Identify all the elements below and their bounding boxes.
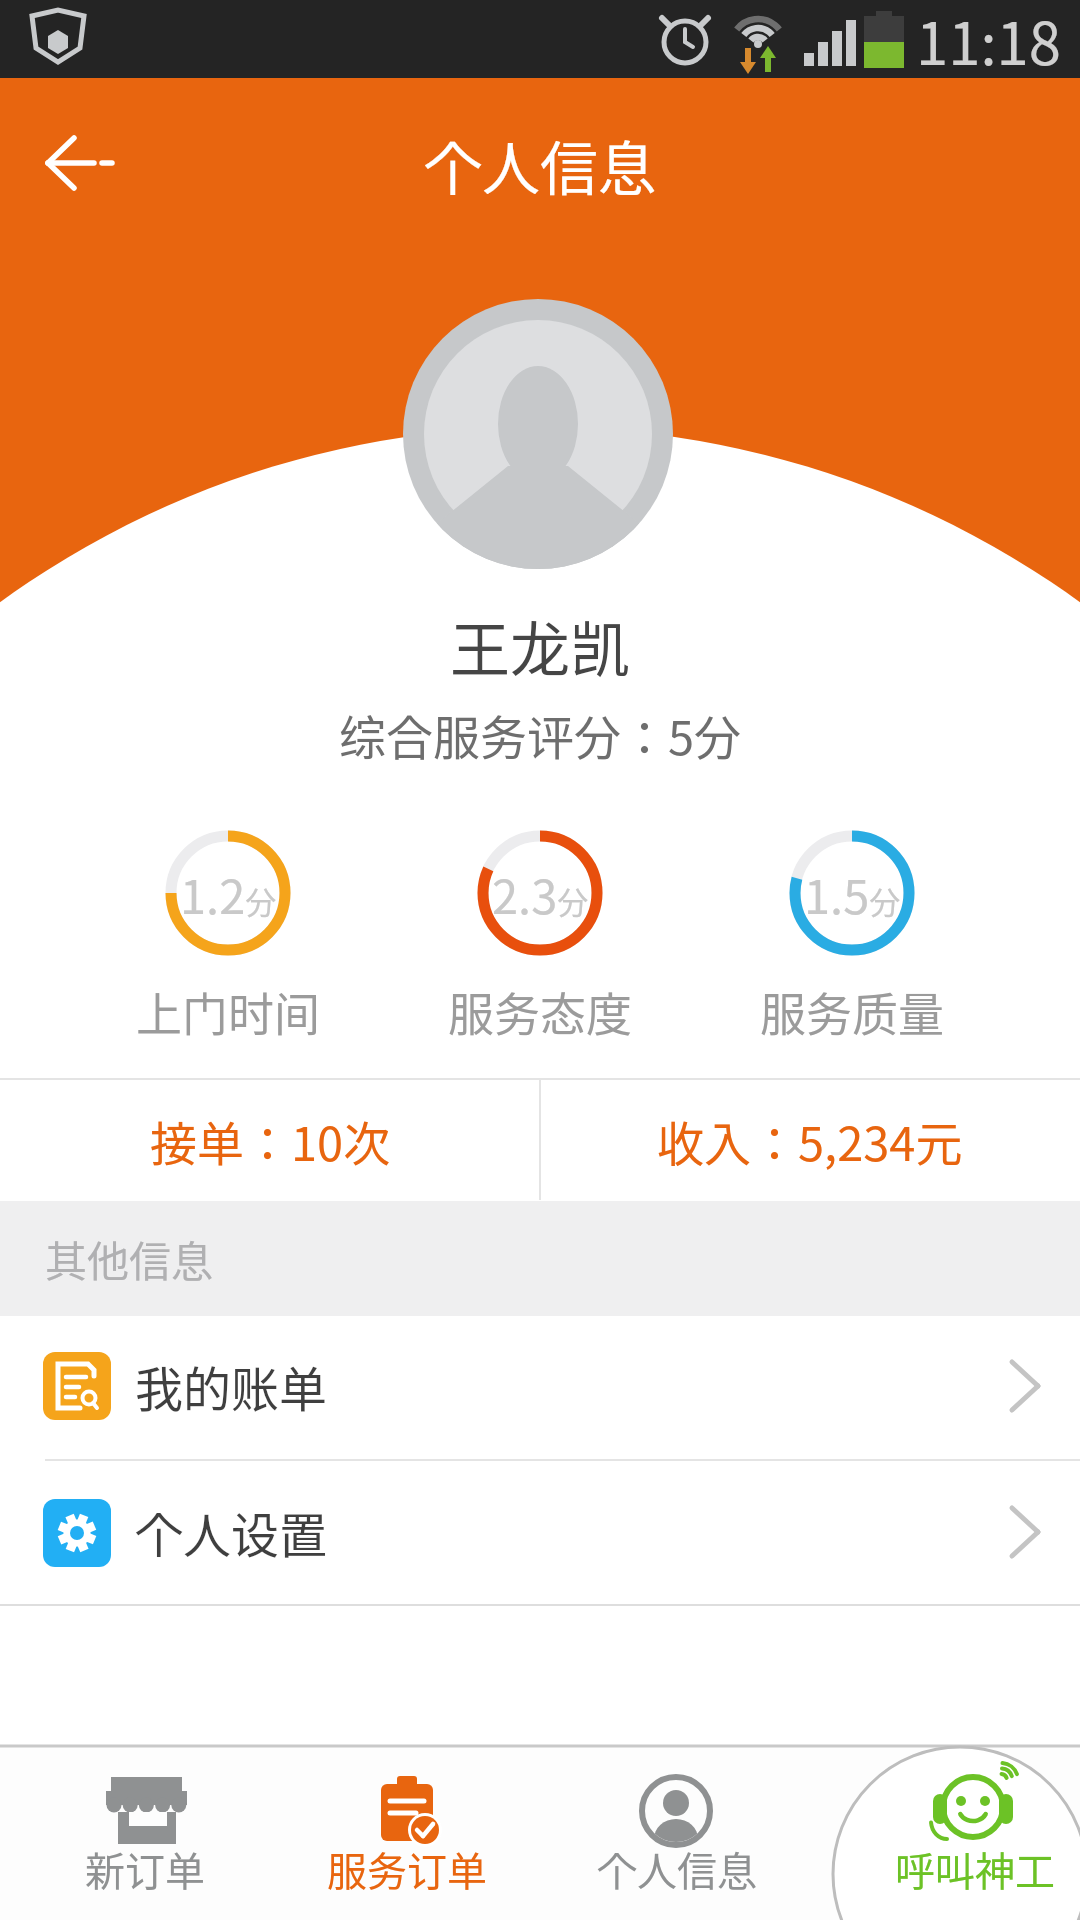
staticText: 1.5分 <box>804 859 901 927</box>
button[interactable] <box>20 110 140 205</box>
staticText: 个人信息 <box>424 123 657 207</box>
staticText: 呼叫神工 <box>895 1840 1055 1898</box>
staticText: 个人信息 <box>597 1840 757 1898</box>
staticText: 服务质量 <box>760 978 944 1045</box>
button[interactable] <box>280 1750 540 1920</box>
button[interactable] <box>541 1080 1080 1200</box>
staticText: 综合服务评分：5分 <box>339 700 742 768</box>
staticText: 2.3分 <box>492 859 589 927</box>
button[interactable] <box>0 1316 1080 1460</box>
staticText: 服务订单 <box>327 1840 487 1898</box>
staticText: 11:18 <box>916 0 1061 82</box>
button[interactable] <box>10 1750 280 1920</box>
button[interactable] <box>0 1080 539 1200</box>
staticText: 其他信息 <box>45 1228 214 1289</box>
staticText: 上门时间 <box>136 978 320 1045</box>
staticText: 收入：5,234元 <box>657 1106 963 1174</box>
staticText: 接单：10次 <box>150 1106 391 1174</box>
staticText: 我的账单 <box>135 1351 328 1421</box>
staticText: 1.2分 <box>180 859 277 927</box>
button[interactable] <box>0 1461 1080 1605</box>
staticText: 王龙凯 <box>450 602 630 689</box>
button[interactable] <box>545 1750 805 1920</box>
staticText: 新订单 <box>85 1840 205 1898</box>
button[interactable] <box>840 1750 1080 1920</box>
staticText: 个人设置 <box>135 1497 328 1567</box>
staticText: 服务态度 <box>448 978 632 1045</box>
